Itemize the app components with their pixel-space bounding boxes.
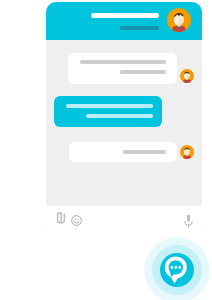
button[interactable]: Attach file bbox=[55, 212, 67, 224]
button[interactable] bbox=[54, 96, 162, 127]
button[interactable]: Emoji bbox=[71, 215, 82, 226]
button[interactable] bbox=[46, 2, 202, 40]
button[interactable]: Record voice message bbox=[183, 214, 194, 228]
button[interactable] bbox=[68, 53, 177, 84]
button[interactable] bbox=[69, 142, 177, 162]
button[interactable]: New message bbox=[144, 237, 210, 300]
